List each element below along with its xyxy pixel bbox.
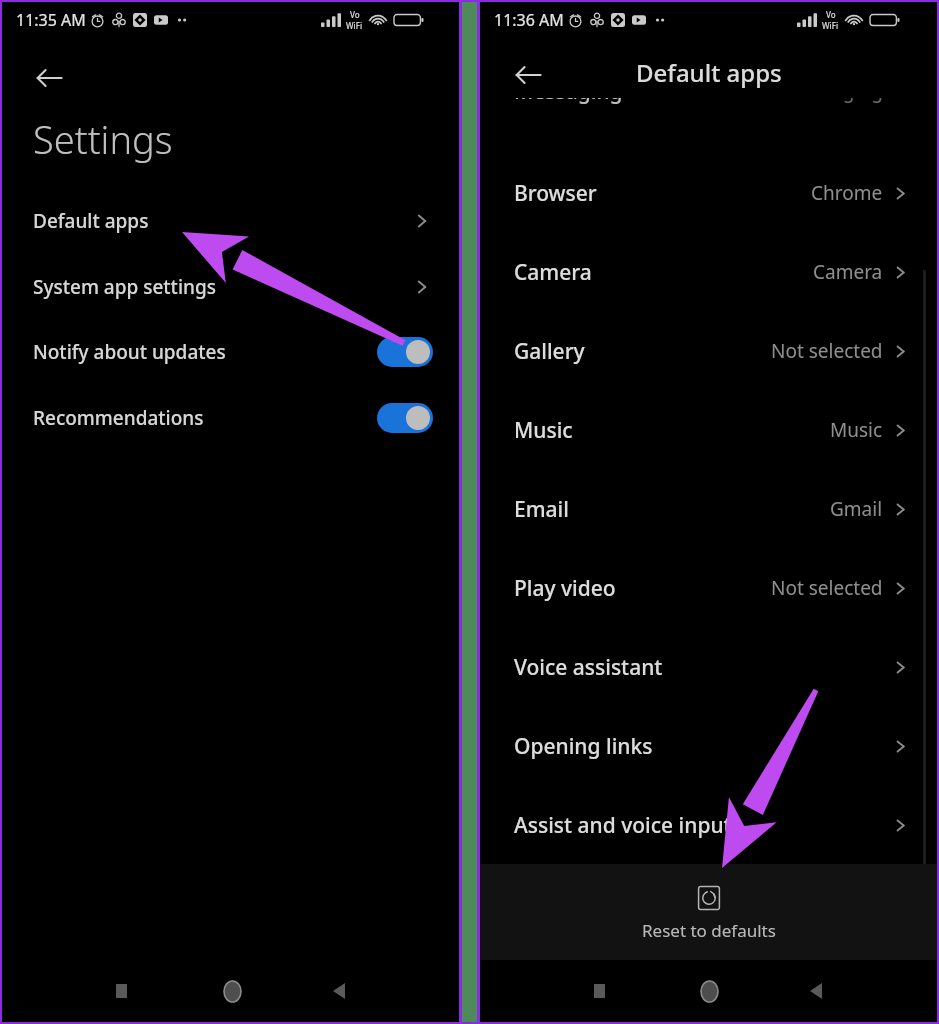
staticText: Camera [813, 259, 883, 285]
staticText: Browser [514, 179, 597, 208]
staticText: Recommendations [33, 405, 204, 431]
staticText: Email [514, 495, 569, 524]
staticText: 11:35 AM [16, 9, 86, 31]
button[interactable]: Toggle [377, 337, 433, 367]
button[interactable]: Recent apps [577, 969, 621, 1013]
staticText: Music [514, 416, 573, 445]
button[interactable]: Opening links [480, 722, 937, 770]
button[interactable]: Play video [480, 564, 937, 612]
button[interactable]: Back [794, 969, 838, 1013]
staticText: Play video [514, 574, 616, 603]
staticText: WiFi [822, 20, 839, 31]
button[interactable]: Recent apps [99, 969, 143, 1013]
button[interactable]: Back [500, 47, 556, 103]
staticText: Not selected [771, 575, 883, 601]
button[interactable]: Back [317, 969, 361, 1013]
staticText: Not selected [771, 338, 883, 364]
button[interactable]: Voice assistant [480, 643, 937, 691]
staticText: Music [830, 417, 883, 443]
button[interactable]: Music [480, 406, 937, 454]
button[interactable]: Notify about updates [2, 329, 461, 375]
staticText: Voice assistant [514, 653, 663, 682]
button[interactable]: Reset to defaults [480, 864, 937, 962]
staticText: System app settings [33, 274, 216, 300]
staticText: Assist and voice input [514, 811, 732, 840]
staticText: Settings [33, 113, 173, 165]
button[interactable]: Messaging [480, 98, 937, 104]
button[interactable]: Home [210, 969, 254, 1013]
button[interactable]: Toggle [377, 403, 433, 433]
button[interactable]: Default apps [2, 198, 461, 244]
button[interactable]: Camera [480, 248, 937, 296]
button[interactable]: Gallery [480, 327, 937, 375]
staticText: Gmail [830, 496, 883, 522]
staticText: Opening links [514, 732, 653, 761]
staticText: Reset to defaults [642, 919, 776, 942]
staticText: Vo [350, 9, 360, 20]
staticText: Default apps [636, 56, 782, 89]
button[interactable]: Recommendations [2, 395, 461, 441]
staticText: Default apps [33, 208, 149, 234]
staticText: Vo [826, 9, 836, 20]
button[interactable]: System app settings [2, 264, 461, 310]
staticText: Messaging [514, 98, 623, 104]
button[interactable]: Home [687, 969, 731, 1013]
staticText: 11:36 AM [494, 9, 564, 31]
button[interactable]: Email [480, 485, 937, 533]
staticText: WiFi [346, 20, 363, 31]
staticText: Notify about updates [33, 339, 226, 365]
staticText: Gallery [514, 337, 585, 366]
button[interactable]: Browser [480, 169, 937, 217]
staticText: Chrome [811, 180, 883, 206]
staticText: Messaging [786, 98, 883, 104]
button[interactable]: Back [20, 49, 78, 107]
staticText: Camera [514, 258, 592, 287]
button[interactable]: Assist and voice input [480, 801, 937, 849]
